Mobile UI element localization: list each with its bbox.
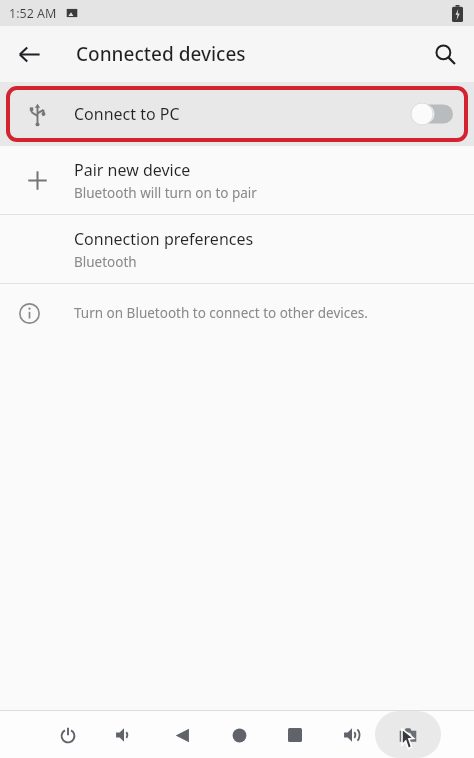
staticText: Connection preferences	[74, 228, 254, 250]
button[interactable]: Volume up	[330, 713, 374, 757]
button[interactable]: Connect to PC toggle	[411, 99, 457, 129]
button[interactable]: Back	[8, 33, 50, 75]
staticText: Turn on Bluetooth to connect to other de…	[74, 304, 368, 322]
staticText: Pair new device	[74, 159, 191, 181]
button[interactable]: Search	[424, 33, 466, 75]
button[interactable]: Power	[46, 713, 90, 757]
button[interactable]: Screenshot	[386, 713, 430, 757]
button[interactable]: Connect to PC	[0, 82, 474, 146]
button[interactable]: Overview	[273, 713, 317, 757]
staticText: Bluetooth will turn on to pair	[74, 184, 257, 202]
button[interactable]: Connection preferences	[0, 215, 474, 283]
button[interactable]: Home	[217, 713, 261, 757]
staticText: 1:52 AM	[9, 5, 57, 22]
button[interactable]: Pair new device	[0, 146, 474, 214]
staticText: Connect to PC	[74, 103, 180, 125]
button[interactable]: Back	[160, 713, 204, 757]
button[interactable]: Volume down	[102, 713, 146, 757]
staticText: Connected devices	[76, 41, 246, 67]
staticText: Bluetooth	[74, 253, 137, 271]
